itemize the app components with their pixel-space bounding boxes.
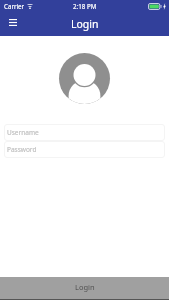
staticText: 2:18 PM xyxy=(73,2,97,10)
staticText: Username xyxy=(7,128,39,137)
button[interactable]: Username xyxy=(4,124,165,141)
staticText: Carrier xyxy=(4,2,25,10)
button[interactable]: Password xyxy=(4,141,165,158)
staticText: Password xyxy=(7,145,37,154)
button[interactable]: Login xyxy=(0,277,169,299)
staticText: Login xyxy=(71,17,99,31)
button[interactable]: Menu xyxy=(4,14,21,31)
staticText: Login xyxy=(75,282,95,292)
